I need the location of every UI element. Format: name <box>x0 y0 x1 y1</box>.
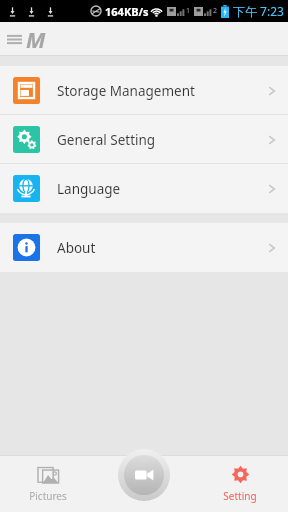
button[interactable]: General Setting <box>0 115 288 164</box>
button[interactable]: Storage Management <box>0 66 288 115</box>
button[interactable]: Setting <box>192 455 288 512</box>
staticText: M <box>26 24 46 54</box>
staticText: Language <box>57 180 121 198</box>
button[interactable]: Language <box>0 164 288 213</box>
staticText: About <box>57 239 96 257</box>
staticText: Setting <box>223 489 257 503</box>
button[interactable]: Pictures <box>0 455 96 512</box>
staticText: General Setting <box>57 131 156 149</box>
staticText: Pictures <box>29 489 67 503</box>
staticText: 下午 7:23 <box>233 3 284 19</box>
button[interactable]: Menu <box>2 27 26 51</box>
button[interactable]: About <box>0 223 288 272</box>
staticText: Storage Management <box>57 82 195 100</box>
staticText: 1 <box>186 6 191 16</box>
staticText: 164KB/s <box>105 4 149 19</box>
staticText: 2 <box>213 6 218 16</box>
button[interactable]: Record video <box>118 449 170 501</box>
